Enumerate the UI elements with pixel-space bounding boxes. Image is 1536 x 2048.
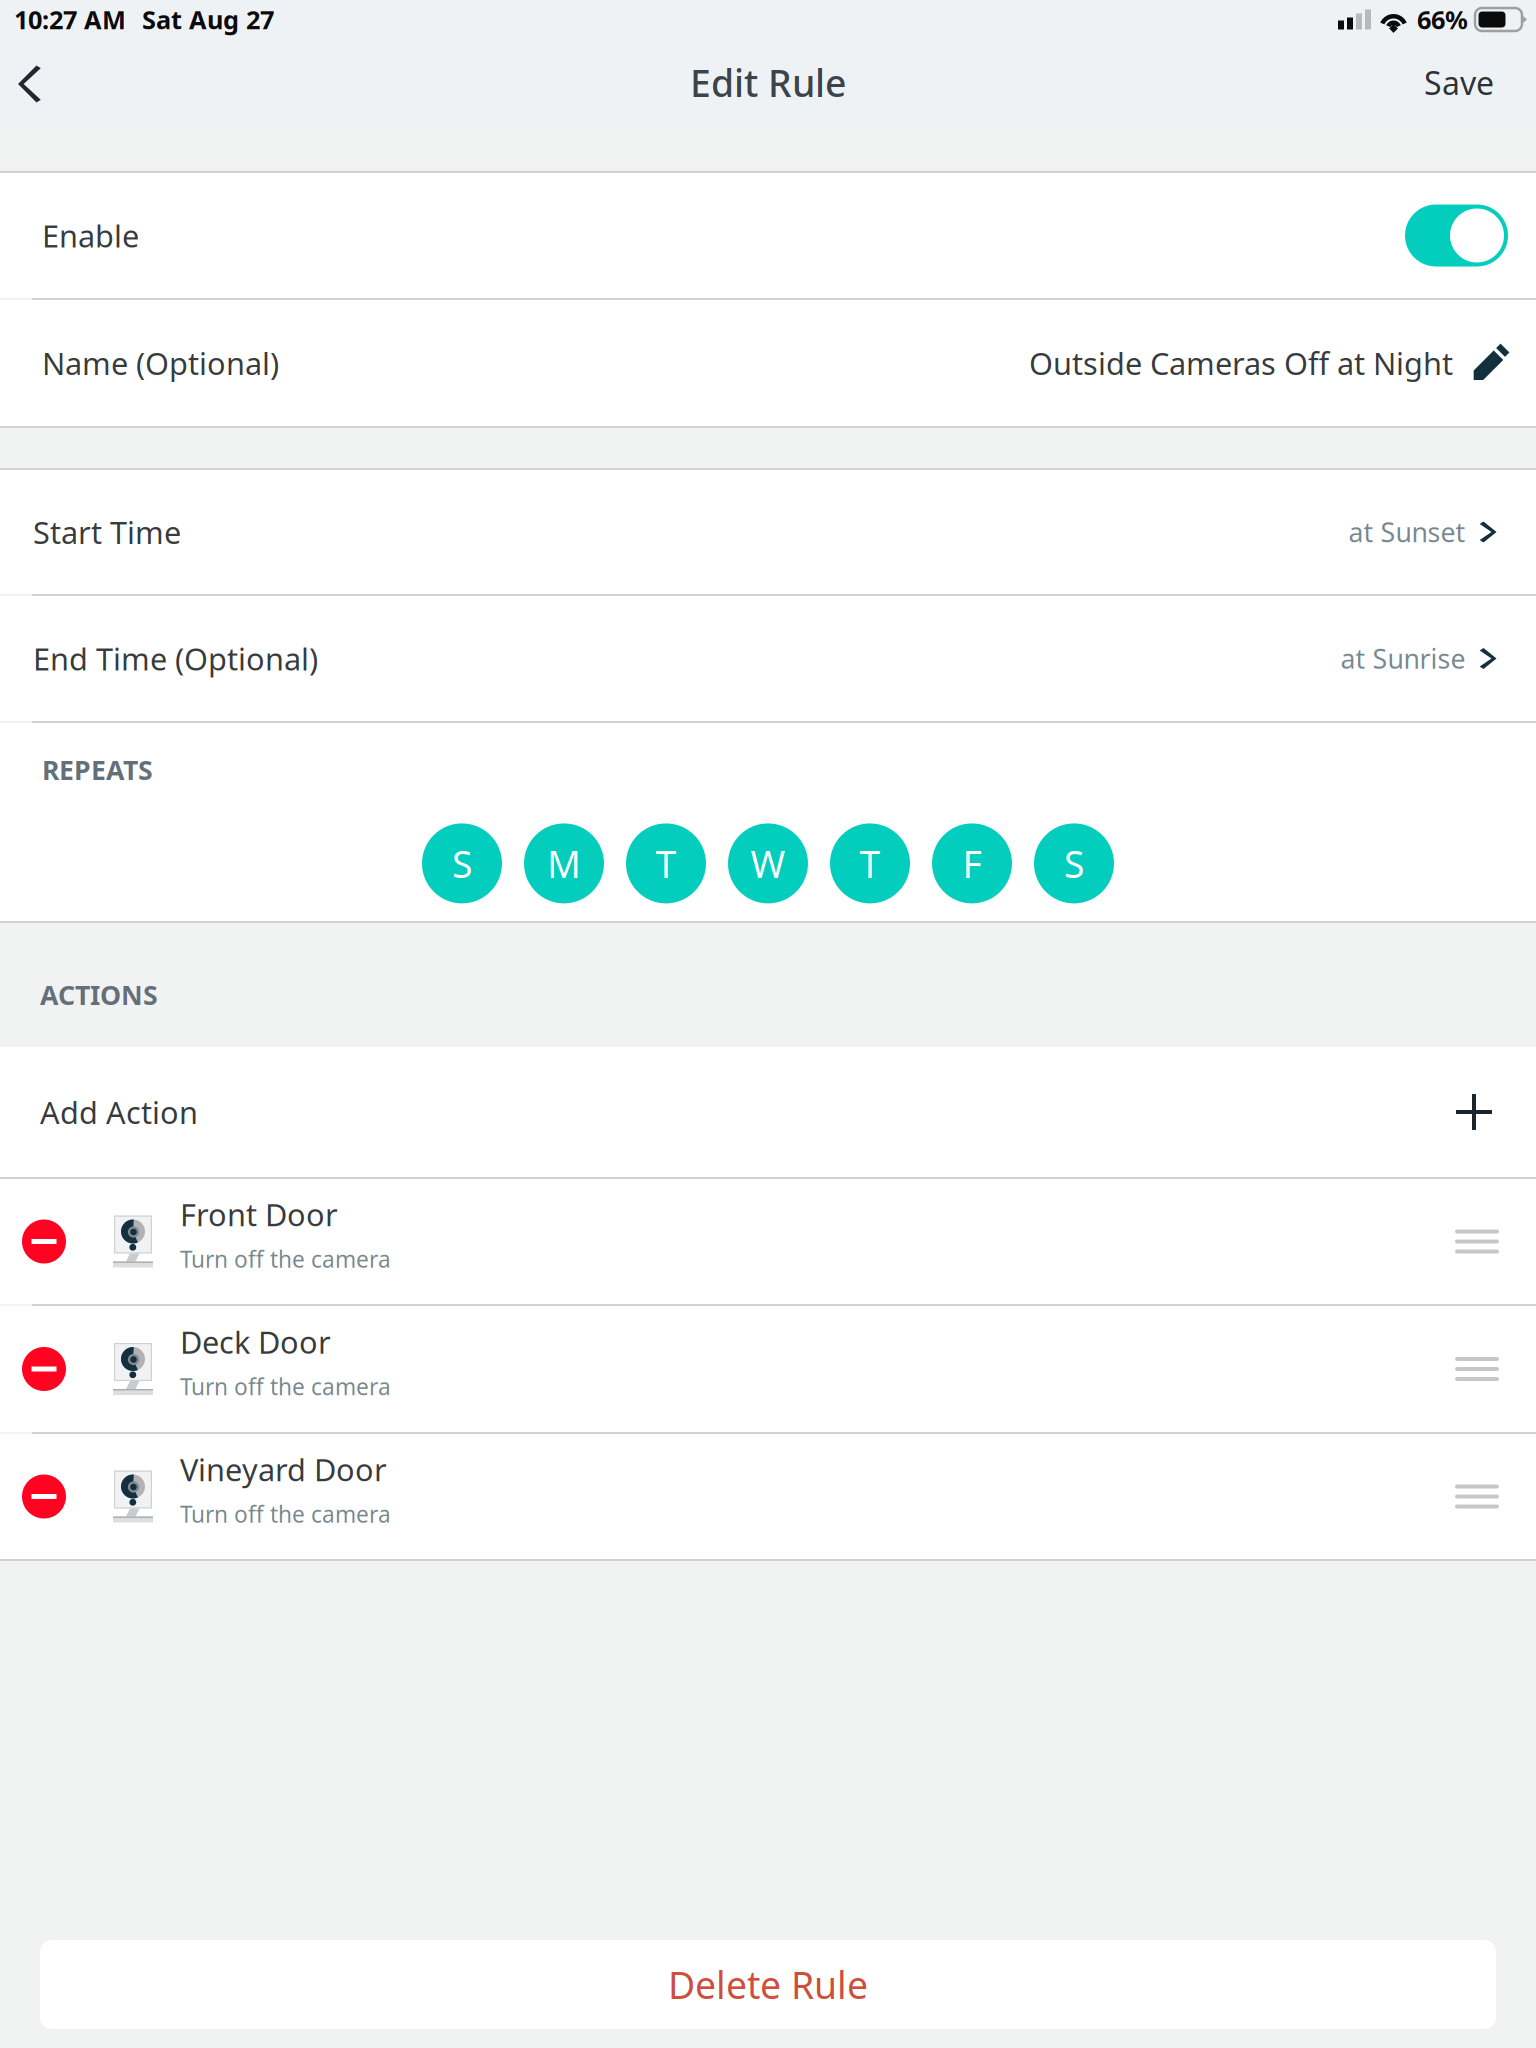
button[interactable]: Remove Front Door bbox=[0, 1179, 113, 1304]
staticText: Turn off the camera bbox=[180, 1499, 391, 1529]
button[interactable]: Reorder Deck Door bbox=[1455, 1306, 1536, 1432]
staticText: Save bbox=[1424, 61, 1494, 104]
button[interactable]: Remove Vineyard Door bbox=[0, 1434, 113, 1559]
staticText: M bbox=[547, 839, 581, 888]
button[interactable]: Remove Deck Door bbox=[0, 1306, 113, 1432]
staticText: Front Door bbox=[180, 1194, 338, 1235]
button[interactable]: S bbox=[1034, 823, 1114, 903]
staticText: Enable bbox=[42, 215, 139, 256]
staticText: Vineyard Door bbox=[180, 1449, 387, 1490]
staticText: Deck Door bbox=[180, 1322, 331, 1362]
button[interactable]: T bbox=[830, 823, 910, 903]
button[interactable]: Add Action bbox=[0, 1047, 1536, 1177]
button[interactable]: M bbox=[524, 823, 604, 903]
staticText: Sat Aug 27 bbox=[142, 3, 274, 36]
button[interactable]: W bbox=[728, 823, 808, 903]
staticText: Delete Rule bbox=[668, 1960, 868, 2009]
staticText: Name (Optional) bbox=[42, 343, 279, 383]
staticText: T bbox=[859, 839, 880, 888]
button[interactable]: Reorder Front Door bbox=[1455, 1179, 1536, 1304]
staticText: F bbox=[962, 839, 981, 888]
button[interactable]: S bbox=[422, 823, 502, 903]
staticText: W bbox=[750, 839, 785, 888]
button[interactable]: Enable bbox=[1405, 204, 1508, 266]
staticText: at Sunrise bbox=[1340, 641, 1465, 676]
staticText: Edit Rule bbox=[690, 58, 846, 107]
staticText: Start Time bbox=[33, 512, 181, 552]
button[interactable]: T bbox=[626, 823, 706, 903]
button[interactable]: Name (Optional) bbox=[0, 300, 1536, 426]
button[interactable]: Back bbox=[0, 44, 65, 128]
staticText: REPEATS bbox=[42, 752, 153, 787]
staticText: 66% bbox=[1417, 3, 1468, 36]
staticText: 10:27 AM bbox=[14, 3, 126, 36]
staticText: at Sunset bbox=[1348, 514, 1465, 550]
staticText: S bbox=[452, 839, 472, 888]
button[interactable]: Start Time bbox=[0, 470, 1536, 594]
staticText: S bbox=[1064, 839, 1084, 888]
staticText: Turn off the camera bbox=[180, 1244, 391, 1274]
button[interactable]: Delete Rule bbox=[40, 1940, 1496, 2029]
staticText: End Time (Optional) bbox=[33, 638, 318, 679]
button[interactable]: Save bbox=[1424, 44, 1536, 128]
button[interactable]: End Time (Optional) bbox=[0, 596, 1536, 721]
button[interactable]: Reorder Vineyard Door bbox=[1455, 1434, 1536, 1559]
staticText: ACTIONS bbox=[40, 977, 158, 1012]
button[interactable]: F bbox=[932, 823, 1012, 903]
staticText: Outside Cameras Off at Night bbox=[1029, 343, 1453, 383]
staticText: Turn off the camera bbox=[180, 1371, 391, 1401]
staticText: Add Action bbox=[40, 1092, 198, 1132]
staticText: T bbox=[655, 839, 676, 888]
